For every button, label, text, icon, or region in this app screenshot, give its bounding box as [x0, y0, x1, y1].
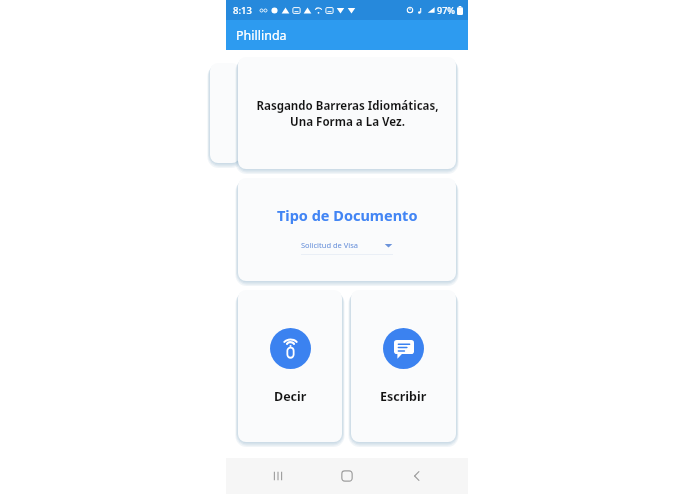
- button[interactable]: Rasgando Barreras Idiomáticas, Una Forma…: [238, 57, 456, 169]
- staticText: Phillinda: [236, 27, 287, 44]
- button[interactable]: Recents: [260, 458, 296, 494]
- staticText: 97%: [437, 4, 455, 16]
- button[interactable]: Back: [399, 458, 435, 494]
- button[interactable]: Home: [329, 458, 365, 494]
- staticText: Tipo de Documento: [277, 205, 418, 225]
- button[interactable]: Solicitud de Visa: [301, 240, 393, 255]
- staticText: Solicitud de Visa: [301, 240, 384, 250]
- button[interactable]: Tipo de Documento: [238, 178, 456, 281]
- staticText: Rasgando Barreras Idiomáticas, Una Forma…: [256, 98, 439, 129]
- staticText: 8:13: [233, 4, 252, 17]
- button[interactable]: Decir - speak aloud: [238, 290, 342, 442]
- staticText: Decir: [274, 388, 307, 405]
- button[interactable]: Escribir - type text: [351, 290, 456, 442]
- staticText: Escribir: [380, 388, 427, 405]
